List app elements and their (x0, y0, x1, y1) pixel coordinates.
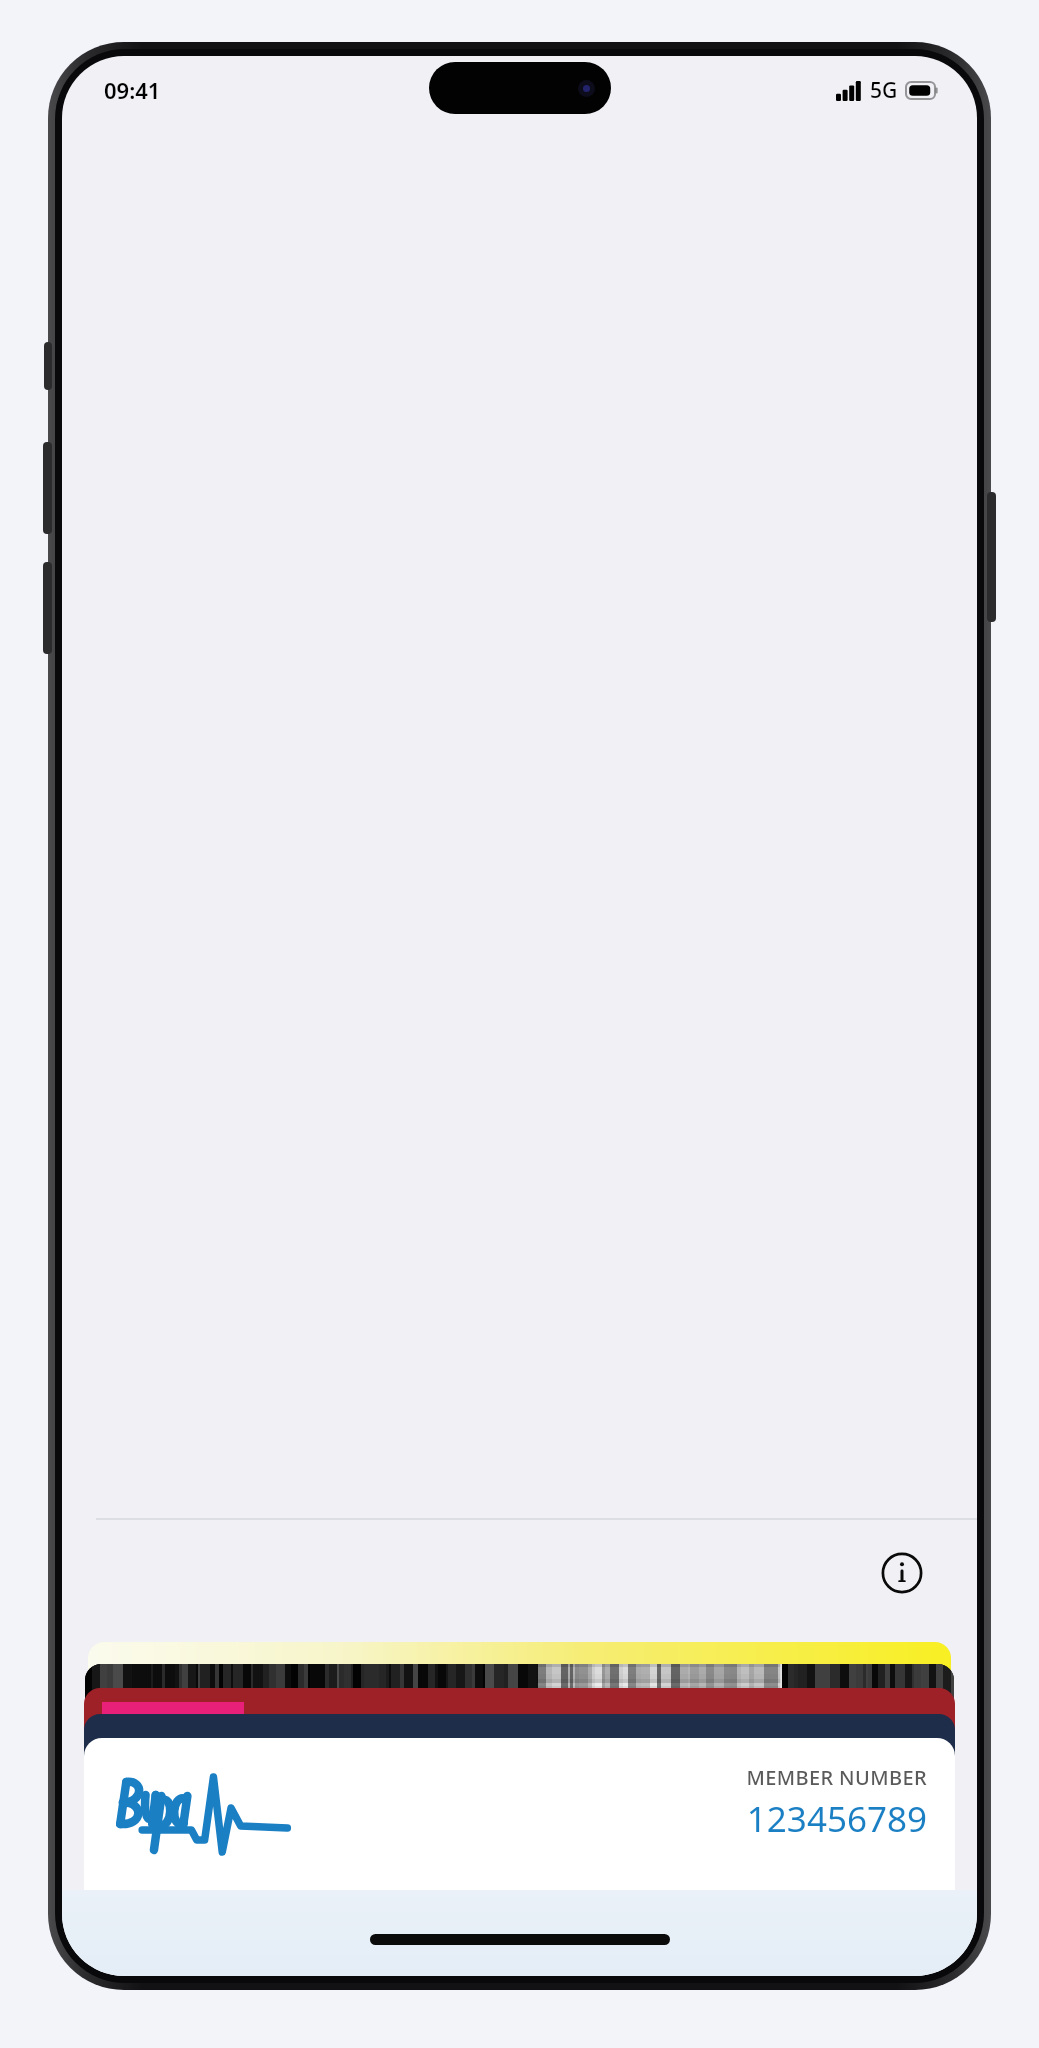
button[interactable]: MEMBER NUMBER (84, 1738, 955, 1890)
staticText: 5G (870, 76, 898, 105)
button[interactable] (84, 1688, 955, 1746)
staticText: MEMBER NUMBER (746, 1764, 927, 1791)
button[interactable] (84, 1714, 955, 1772)
button[interactable] (85, 1664, 954, 1722)
staticText: 09:41 (104, 75, 161, 105)
staticText: 123456789 (746, 1795, 927, 1843)
button[interactable] (88, 1642, 951, 1702)
button[interactable]: Information (875, 1546, 929, 1600)
